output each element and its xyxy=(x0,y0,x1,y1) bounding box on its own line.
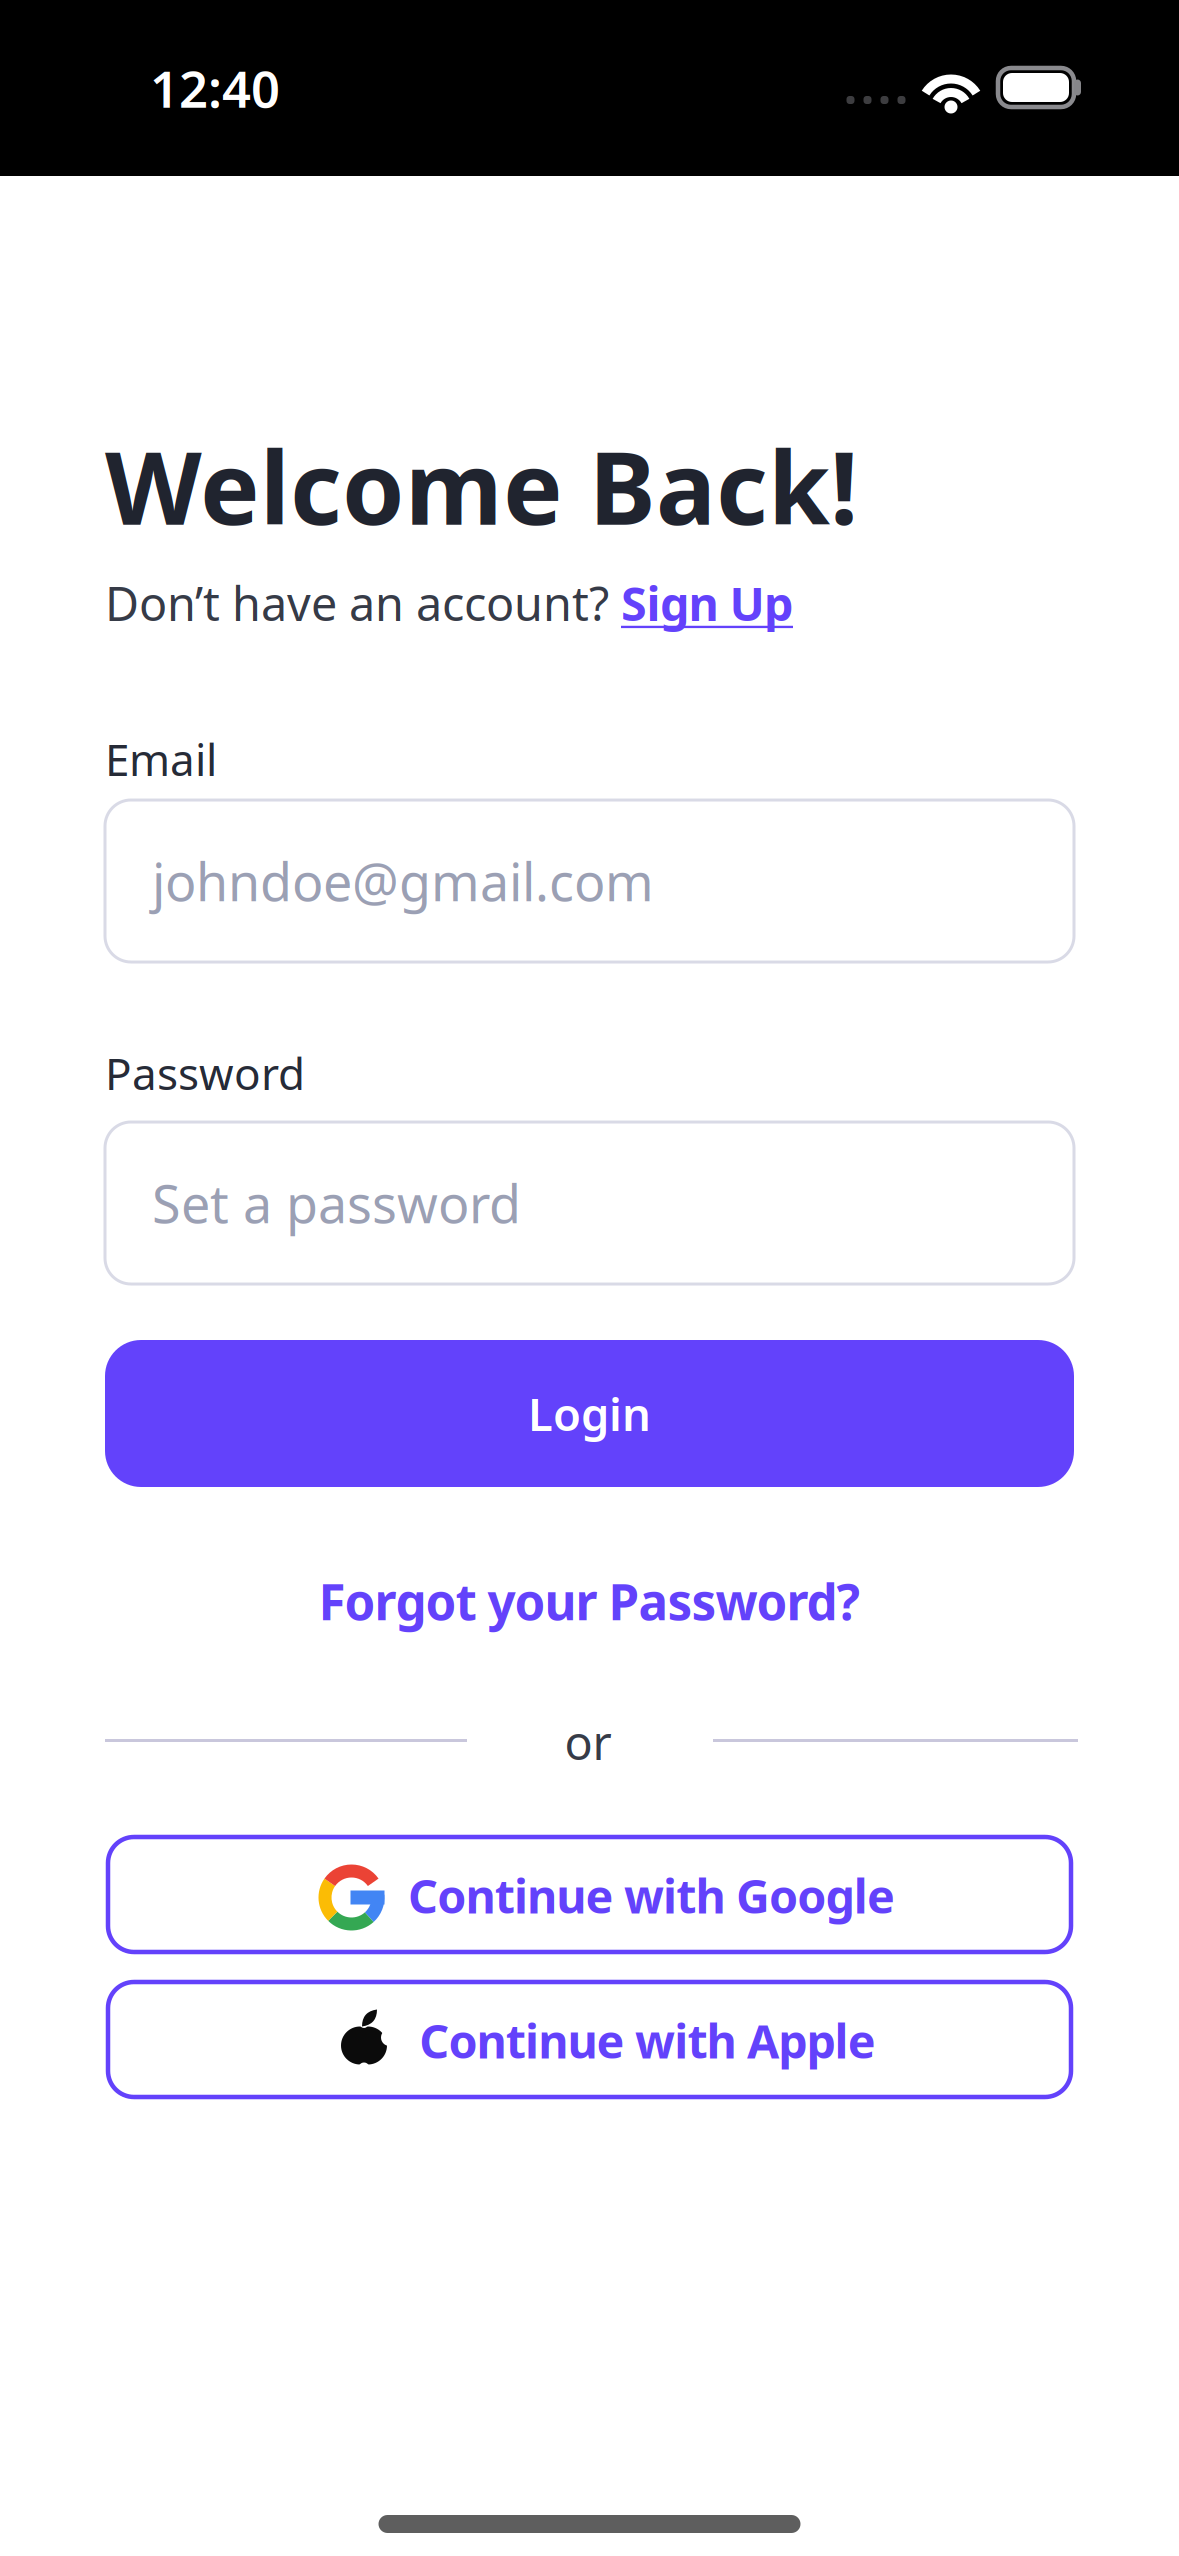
staticText: Set a password xyxy=(152,1168,521,1238)
staticText: 12:40 xyxy=(150,54,280,122)
staticText: johndoe@gmail.com xyxy=(152,846,654,916)
button[interactable]: Sign Up xyxy=(621,572,793,634)
staticText: Forgot your Password? xyxy=(318,1568,860,1634)
staticText: Welcome Back! xyxy=(105,420,858,552)
staticText: Sign Up xyxy=(621,572,793,634)
button[interactable]: Forgot your Password? xyxy=(318,1568,860,1634)
button[interactable]: Continue with Apple xyxy=(108,1982,1071,2097)
staticText: Password xyxy=(105,1044,305,1102)
staticText: Don’t have an account? xyxy=(105,572,621,634)
staticText: or xyxy=(564,1711,611,1773)
button[interactable]: Login xyxy=(105,1340,1074,1487)
button[interactable]: johndoe@gmail.com xyxy=(105,800,1074,962)
staticText: Email xyxy=(105,730,217,788)
staticText: Continue with Apple xyxy=(419,2009,876,2071)
button[interactable]: Continue with Google xyxy=(108,1837,1071,1952)
staticText: Continue with Google xyxy=(408,1864,895,1926)
staticText: Login xyxy=(528,1383,651,1444)
button[interactable]: Set a password xyxy=(105,1122,1074,1284)
